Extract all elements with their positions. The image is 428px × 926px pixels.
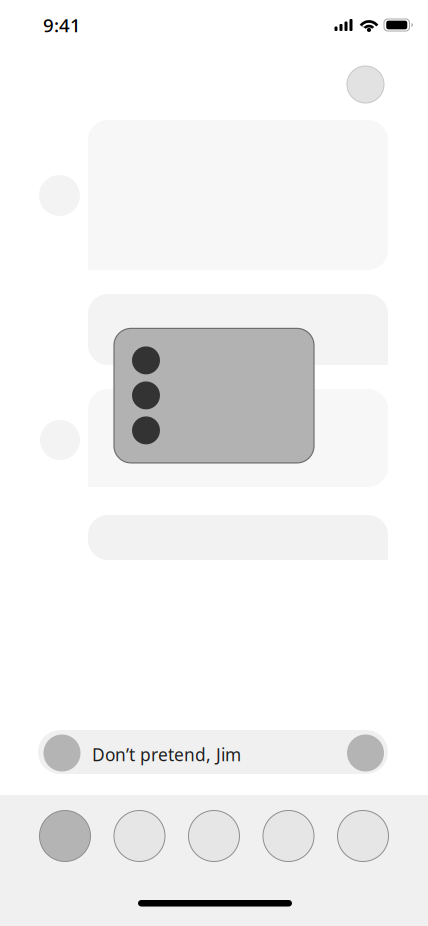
button[interactable]: Calls bbox=[114, 810, 165, 861]
staticText: Don’t pretend, Jim bbox=[92, 743, 241, 766]
button[interactable]: Contacts bbox=[188, 810, 239, 861]
staticText: 9:41 bbox=[43, 13, 81, 37]
button[interactable]: Send bbox=[347, 734, 384, 771]
button[interactable]: Messages bbox=[39, 810, 90, 861]
button[interactable]: Don’t pretend, Jim bbox=[38, 730, 388, 774]
button[interactable]: Settings bbox=[337, 810, 388, 861]
button[interactable]: Search bbox=[263, 810, 314, 861]
